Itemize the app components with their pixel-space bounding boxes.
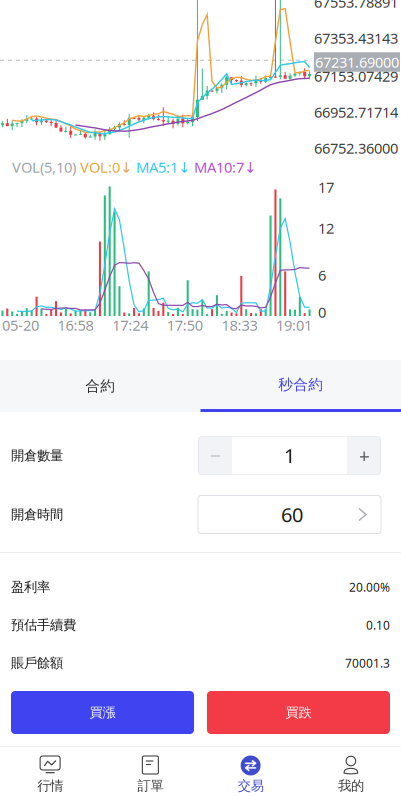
staticText: 60 xyxy=(281,501,303,528)
staticText: − xyxy=(209,442,220,469)
staticText: 1 xyxy=(284,442,295,469)
staticText: 67353.43143 xyxy=(314,28,398,48)
staticText: 17:50 xyxy=(167,315,203,335)
staticText: 盈利率 xyxy=(11,579,50,595)
staticText: 66752.36000 xyxy=(314,138,398,158)
staticText: 賬戶餘額 xyxy=(11,655,63,671)
staticText: 05-20 xyxy=(2,315,39,335)
button[interactable]: 合約 xyxy=(0,360,200,412)
staticText: 合約 xyxy=(85,377,115,395)
staticText: 66952.71714 xyxy=(314,102,398,122)
button[interactable]: 買漲 xyxy=(11,691,194,734)
staticText: 67553.78891 xyxy=(314,0,398,12)
staticText: 我的 xyxy=(338,777,364,794)
staticText: 6 xyxy=(318,265,326,285)
button[interactable]: 行情 xyxy=(0,746,100,796)
staticText: 訂單 xyxy=(137,777,163,794)
staticText: MA10:7↓ xyxy=(194,157,256,177)
staticText: MA5:1↓ xyxy=(136,157,190,177)
button[interactable]: 買跌 xyxy=(207,691,390,734)
staticText: 20.00% xyxy=(349,579,390,595)
staticText: 開倉數量 xyxy=(11,447,63,464)
staticText: 67231.69000 xyxy=(315,52,399,72)
button[interactable]: 60 xyxy=(198,495,381,533)
staticText: + xyxy=(358,442,369,469)
button[interactable]: + xyxy=(347,436,381,474)
staticText: 18:33 xyxy=(221,315,257,335)
staticText: 預估手續費 xyxy=(11,617,76,633)
staticText: 0 xyxy=(318,302,326,322)
staticText: 買跌 xyxy=(285,704,311,721)
staticText: VOL:0↓ xyxy=(80,157,132,177)
button[interactable]: − xyxy=(198,436,232,474)
button[interactable]: 訂單 xyxy=(100,746,200,796)
staticText: 買漲 xyxy=(89,704,115,721)
staticText: 19:01 xyxy=(276,315,312,335)
staticText: 70001.3 xyxy=(345,655,390,671)
staticText: 行情 xyxy=(37,777,63,794)
button[interactable]: 我的 xyxy=(301,746,401,796)
staticText: 17 xyxy=(318,177,334,197)
staticText: 開倉時間 xyxy=(11,506,63,523)
staticText: 0.10 xyxy=(366,617,390,633)
staticText: 秒合約 xyxy=(278,375,323,393)
staticText: 12 xyxy=(318,218,334,238)
staticText: 交易 xyxy=(238,777,264,794)
staticText: 16:58 xyxy=(58,315,94,335)
button[interactable]: 秒合約 xyxy=(200,360,401,412)
button[interactable]: 交易 xyxy=(200,746,301,796)
staticText: 67153.07429 xyxy=(314,66,398,86)
staticText: 17:24 xyxy=(112,315,148,335)
staticText: VOL(5,10) xyxy=(12,157,76,177)
